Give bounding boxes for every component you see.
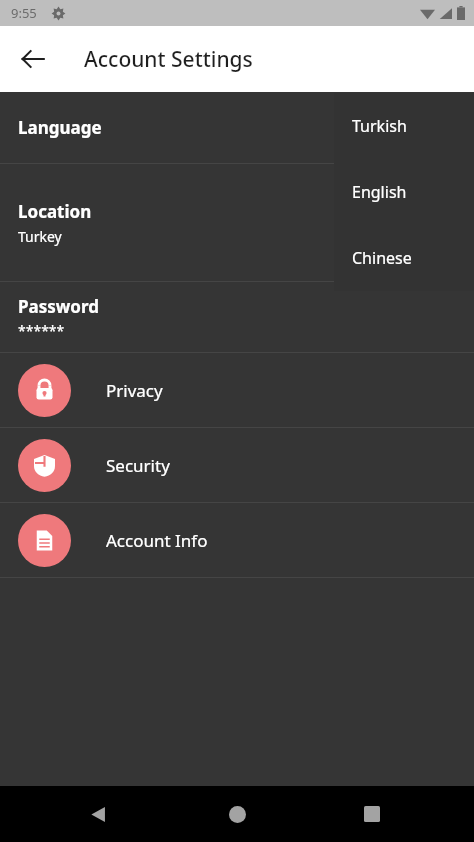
staticText: 9:55 (11, 4, 37, 22)
staticText: Language (18, 116, 102, 139)
staticText: Turkey (18, 227, 62, 246)
staticText: Chinese (352, 247, 412, 269)
button[interactable]: Location (0, 164, 474, 281)
button[interactable]: Language (0, 92, 474, 163)
button[interactable]: Chinese (334, 225, 474, 291)
button[interactable]: Account Info (0, 503, 474, 577)
button[interactable]: Password (0, 282, 474, 352)
button[interactable]: Security (0, 428, 474, 502)
staticText: English (352, 181, 407, 203)
staticText: Turkish (352, 115, 407, 137)
button[interactable]: English (334, 159, 474, 225)
staticText: ****** (18, 321, 65, 340)
staticText: Privacy (106, 379, 163, 402)
staticText: Location (18, 200, 92, 223)
staticText: Security (106, 454, 170, 477)
button[interactable]: Home (213, 790, 261, 838)
staticText: Account Settings (84, 45, 253, 74)
button[interactable]: Recent apps (348, 790, 396, 838)
staticText: Password (18, 295, 99, 318)
button[interactable]: Back (74, 790, 122, 838)
button[interactable]: Turkish (334, 93, 474, 159)
button[interactable]: Back (10, 36, 56, 82)
staticText: Account Info (106, 529, 208, 552)
button[interactable]: Privacy (0, 353, 474, 427)
